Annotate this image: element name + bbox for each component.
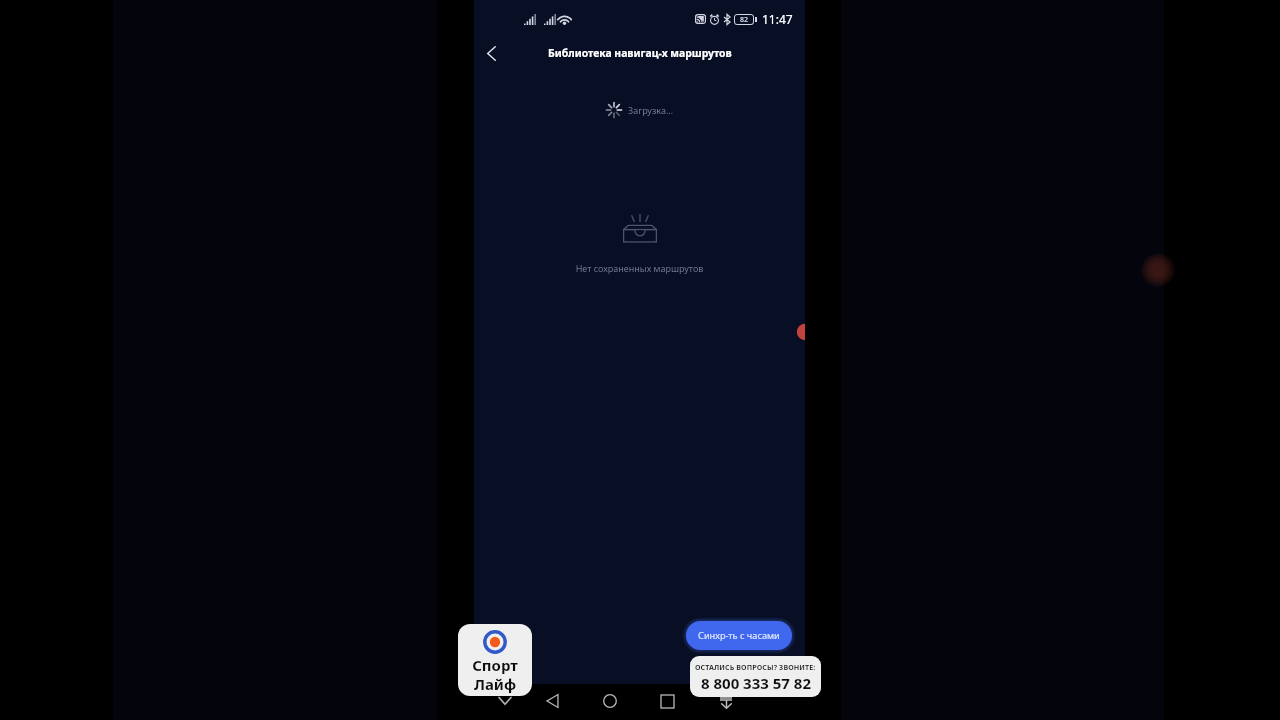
staticText: ОСТАЛИСЬ ВОПРОСЫ? ЗВОНИТЕ:	[695, 662, 816, 672]
button[interactable]: Синхр-ть с часами	[686, 621, 792, 650]
staticText: 8 800 333 57 82	[701, 673, 811, 693]
button[interactable]: Recent apps	[652, 686, 682, 716]
staticText: Нет сохраненных маршрутов	[474, 262, 805, 274]
button[interactable]: Спорт Лайф	[458, 624, 532, 696]
staticText: Библиотека навигац-х маршрутов	[548, 46, 732, 60]
button[interactable]: Home	[595, 686, 625, 716]
staticText: 82	[740, 15, 749, 24]
button[interactable]: ОСТАЛИСЬ ВОПРОСЫ? ЗВОНИТЕ:	[690, 656, 821, 697]
button[interactable]: Back	[537, 686, 567, 716]
staticText: Синхр-ть с часами	[698, 629, 780, 642]
button[interactable]: Collapse Sport Life bubble	[496, 694, 514, 708]
staticText: Загрузка...	[628, 104, 674, 116]
button[interactable]: Hide phone number bubble	[718, 696, 734, 711]
staticText: Спорт Лайф	[472, 655, 518, 694]
staticText: 11:47	[762, 11, 793, 27]
button[interactable]: Back	[476, 38, 506, 68]
